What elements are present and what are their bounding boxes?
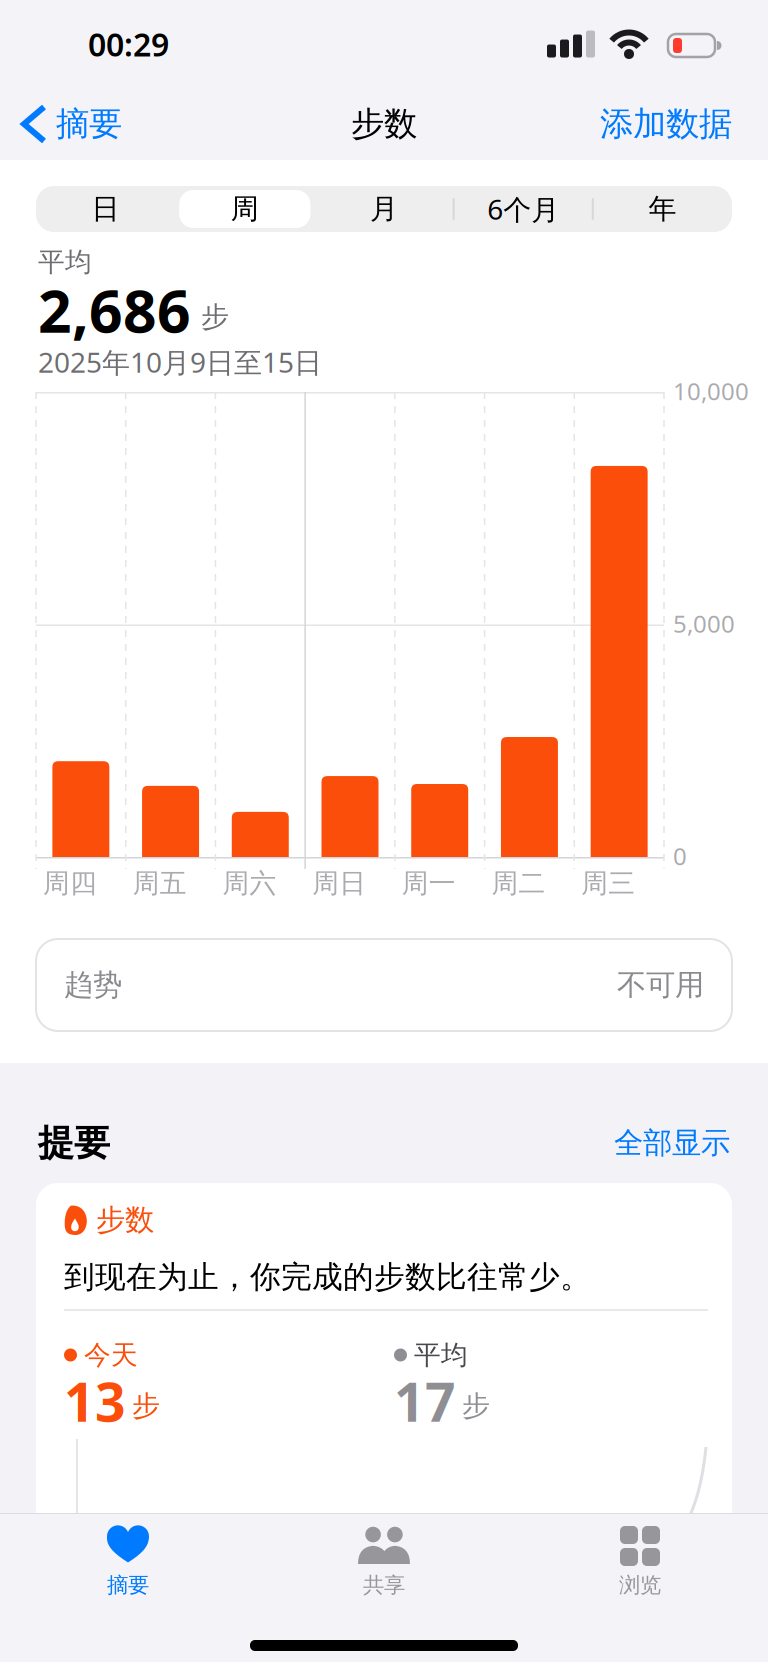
staticText: 周五 [133,867,187,900]
staticText: 全部显示 [614,1125,730,1161]
staticText: 日 [92,192,120,226]
staticText: 趋势 [64,967,122,1003]
button[interactable]: 共享 [256,1526,512,1598]
staticText: 月 [370,192,398,226]
staticText: 提要 [38,1121,110,1165]
staticText: 步 [201,300,229,334]
staticText: 浏览 [619,1572,661,1598]
staticText: 不可用 [617,967,704,1003]
staticText: 步数 [96,1202,154,1238]
button[interactable]: 摘要 [0,1526,256,1598]
staticText: 周 [231,192,259,226]
button[interactable]: 返回摘要 [0,103,122,144]
button[interactable]: 月 [314,186,454,232]
staticText: 6个月 [487,190,559,228]
staticText: 13 [64,1366,126,1436]
staticText: 到现在为止，你完成的步数比往常少。 [64,1258,591,1296]
button[interactable]: 日 [36,186,175,232]
staticText: 5,000 [673,607,735,639]
staticText: 周二 [492,867,546,900]
staticText: 平均 [38,246,92,278]
staticText: 0 [673,840,687,872]
staticText: 年 [648,192,676,226]
staticText: 今天 [84,1339,138,1371]
button[interactable]: 浏览 [512,1526,768,1598]
staticText: 周一 [402,867,456,900]
staticText: 摘要 [56,103,122,144]
staticText: 共享 [363,1572,405,1598]
button[interactable]: 周 [175,186,314,232]
staticText: 00:29 [88,23,169,65]
staticText: 10,000 [673,375,749,407]
button[interactable]: 全部显示 [614,1125,730,1161]
button[interactable]: 添加数据 [600,103,768,144]
staticText: 周六 [222,867,276,900]
staticText: 添加数据 [600,103,732,144]
staticText: 步数 [351,103,417,144]
staticText: 步 [132,1389,160,1423]
staticText: 2025年10月9日至15日 [38,343,322,381]
staticText: 摘要 [107,1572,149,1598]
staticText: 17 [394,1366,456,1436]
button[interactable]: 6个月 [454,186,593,232]
staticText: 平均 [414,1339,468,1371]
staticText: 周三 [581,867,635,900]
button[interactable]: 年 [593,186,732,232]
staticText: 步 [462,1389,490,1423]
button[interactable]: 趋势 [36,939,732,1031]
staticText: 周四 [43,867,97,900]
staticText: 周日 [312,867,366,900]
staticText: 2,686 [38,271,191,349]
